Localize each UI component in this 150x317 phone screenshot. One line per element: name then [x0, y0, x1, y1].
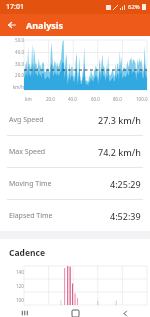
staticText: 30.0: [15, 61, 24, 67]
button[interactable]: Elapsed Time: [0, 200, 150, 231]
button[interactable]: Max Speed: [0, 136, 150, 167]
staticText: 4:25:29: [110, 178, 141, 190]
staticText: Elapsed Time: [9, 211, 53, 221]
staticText: km/h: [12, 84, 24, 90]
staticText: Analysis: [26, 19, 64, 31]
button[interactable]: Recents: [0, 309, 50, 317]
staticText: 120: [16, 283, 24, 289]
button[interactable]: Back: [100, 309, 150, 317]
staticText: 4:52:39: [110, 210, 141, 222]
button[interactable]: Back: [3, 16, 21, 34]
staticText: 60.0: [91, 96, 100, 102]
staticText: 100: [16, 297, 24, 303]
staticText: Max Speed: [9, 147, 46, 157]
staticText: 17:01: [6, 2, 24, 12]
staticText: 74.2 km/h: [98, 146, 141, 158]
button[interactable]: Moving Time: [0, 168, 150, 199]
staticText: Moving Time: [9, 179, 52, 189]
staticText: Cadence: [9, 247, 45, 259]
staticText: 40.0: [68, 96, 77, 102]
staticText: 80.0: [113, 96, 122, 102]
staticText: km: [25, 96, 32, 102]
staticText: Avg Speed: [9, 115, 44, 125]
staticText: 20.0: [46, 96, 55, 102]
staticText: 50.0: [15, 37, 24, 43]
button[interactable]: Avg Speed: [0, 104, 150, 135]
staticText: 40.0: [15, 49, 24, 55]
staticText: 100.0: [136, 96, 148, 102]
staticText: 20.0: [15, 72, 24, 78]
staticText: 140: [16, 269, 24, 275]
button[interactable]: Home: [50, 309, 100, 317]
staticText: 27.3 km/h: [98, 114, 141, 126]
staticText: 62%: [128, 3, 140, 11]
